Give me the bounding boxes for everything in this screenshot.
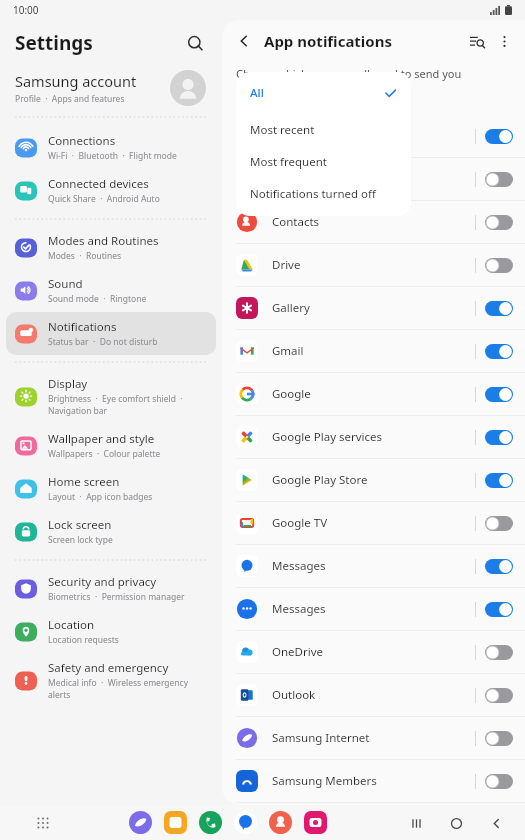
button[interactable]: Apps bbox=[32, 812, 54, 834]
staticText: Modes and Routines bbox=[48, 233, 159, 249]
staticText: Messages bbox=[272, 558, 475, 574]
button[interactable]: All bbox=[236, 78, 411, 108]
staticText: Google TV bbox=[272, 515, 475, 531]
staticText: Google Play services bbox=[272, 429, 475, 445]
button[interactable]: Wallpaper and style bbox=[6, 424, 216, 467]
button[interactable]: Contacts bbox=[269, 811, 292, 834]
staticText: Wallpapers · Colour palette bbox=[48, 448, 161, 460]
staticText: Layout · App icon badges bbox=[48, 491, 153, 503]
staticText: Contacts bbox=[272, 214, 475, 230]
button[interactable]: OneDrive notifications toggle bbox=[485, 645, 513, 660]
button[interactable]: Messages bbox=[222, 588, 525, 630]
staticText: Biometrics · Permission manager bbox=[48, 591, 185, 603]
staticText: Display bbox=[48, 376, 88, 392]
button[interactable]: Sound bbox=[6, 269, 216, 312]
button[interactable]: Gallery bbox=[304, 811, 327, 834]
button[interactable]: Samsung Members notifications toggle bbox=[485, 774, 513, 789]
button[interactable]: Most frequent bbox=[236, 146, 411, 178]
button[interactable]: My Files bbox=[164, 811, 187, 834]
staticText: Samsung Internet bbox=[272, 730, 475, 746]
staticText: Screen lock type bbox=[48, 534, 113, 546]
button[interactable]: Samsung Internet bbox=[222, 717, 525, 759]
button[interactable]: Notifications bbox=[6, 312, 216, 355]
staticText: Google bbox=[272, 386, 475, 402]
button[interactable]: Gmail bbox=[222, 330, 525, 372]
staticText: Wallpaper and style bbox=[48, 431, 155, 447]
button[interactable]: Google bbox=[222, 373, 525, 415]
button[interactable]: Google TV notifications toggle bbox=[485, 516, 513, 531]
button[interactable]: Calendar bbox=[222, 115, 525, 157]
staticText: Lock screen bbox=[48, 517, 112, 533]
button[interactable]: Search settings bbox=[182, 30, 208, 56]
staticText: 10:00 bbox=[13, 3, 39, 17]
button[interactable]: Google Play services notifications toggl… bbox=[485, 430, 513, 445]
button[interactable]: Contacts bbox=[222, 201, 525, 243]
button[interactable]: Contacts notifications toggle bbox=[485, 215, 513, 230]
staticText: Messages bbox=[272, 601, 475, 617]
staticText: Connections bbox=[48, 133, 116, 149]
button[interactable]: Google Play services bbox=[222, 416, 525, 458]
button[interactable]: Search in list bbox=[463, 27, 491, 55]
button[interactable]: Camera notifications toggle bbox=[485, 172, 513, 187]
button[interactable]: Connected devices bbox=[6, 169, 216, 212]
staticText: Samsung account bbox=[15, 71, 137, 91]
staticText: Calendar bbox=[272, 128, 475, 144]
staticText: Medical info · Wireless emergency alerts bbox=[48, 677, 189, 701]
button[interactable]: Notifications turned off bbox=[236, 178, 411, 210]
staticText: Location requests bbox=[48, 634, 119, 646]
button[interactable]: Lock screen bbox=[6, 510, 216, 553]
button[interactable]: Samsung Members bbox=[222, 760, 525, 802]
staticText: Most recent bbox=[250, 122, 315, 138]
button[interactable]: Google notifications toggle bbox=[485, 387, 513, 402]
button[interactable]: Messages notifications toggle bbox=[485, 602, 513, 617]
button[interactable]: Gallery notifications toggle bbox=[485, 301, 513, 316]
button[interactable]: Camera bbox=[222, 158, 525, 200]
button[interactable]: Drive bbox=[222, 244, 525, 286]
staticText: Choose which apps are allowed to send yo… bbox=[236, 66, 462, 97]
button[interactable]: Gallery bbox=[222, 287, 525, 329]
staticText: Connected devices bbox=[48, 176, 149, 192]
button[interactable]: Outlook bbox=[222, 674, 525, 716]
button[interactable]: Back bbox=[230, 27, 258, 55]
button[interactable]: Google Play Store bbox=[222, 459, 525, 501]
staticText: Notifications bbox=[48, 319, 117, 335]
button[interactable]: Samsung Internet bbox=[129, 811, 152, 834]
button[interactable]: Modes and Routines bbox=[6, 226, 216, 269]
button[interactable]: Messages bbox=[234, 811, 257, 834]
button[interactable]: Back bbox=[483, 810, 509, 836]
staticText: OneDrive bbox=[272, 644, 475, 660]
button[interactable]: Home bbox=[443, 810, 469, 836]
staticText: Profile · Apps and features bbox=[15, 93, 125, 105]
button[interactable]: Security and privacy bbox=[6, 567, 216, 610]
staticText: Most frequent bbox=[250, 154, 327, 170]
button[interactable]: Samsung account bbox=[0, 66, 222, 114]
staticText: Status bar · Do not disturb bbox=[48, 336, 158, 348]
button[interactable]: Display bbox=[6, 369, 216, 424]
button[interactable]: Google Play Store notifications toggle bbox=[485, 473, 513, 488]
button[interactable]: OneDrive bbox=[222, 631, 525, 673]
staticText: Google Play Store bbox=[272, 472, 475, 488]
staticText: Drive bbox=[272, 257, 475, 273]
staticText: Brightness · Eye comfort shield · Naviga… bbox=[48, 393, 183, 417]
button[interactable]: Samsung Internet notifications toggle bbox=[485, 731, 513, 746]
staticText: Quick Share · Android Auto bbox=[48, 193, 160, 205]
button[interactable]: Phone bbox=[199, 811, 222, 834]
button[interactable]: Messages notifications toggle bbox=[485, 559, 513, 574]
staticText: Outlook bbox=[272, 687, 475, 703]
button[interactable]: Most recent bbox=[236, 114, 411, 146]
staticText: Gallery bbox=[272, 300, 475, 316]
button[interactable]: Location bbox=[6, 610, 216, 653]
button[interactable]: Gmail notifications toggle bbox=[485, 344, 513, 359]
button[interactable]: Google TV bbox=[222, 502, 525, 544]
button[interactable]: Calendar notifications toggle bbox=[485, 129, 513, 144]
button[interactable]: Home screen bbox=[6, 467, 216, 510]
staticText: All bbox=[250, 85, 264, 101]
button[interactable]: Safety and emergency bbox=[6, 653, 216, 708]
button[interactable]: Messages bbox=[222, 545, 525, 587]
button[interactable]: Drive notifications toggle bbox=[485, 258, 513, 273]
button[interactable]: More options bbox=[491, 28, 517, 54]
button[interactable]: Outlook notifications toggle bbox=[485, 688, 513, 703]
button[interactable]: Connections bbox=[6, 126, 216, 169]
button[interactable]: Recents bbox=[403, 810, 429, 836]
